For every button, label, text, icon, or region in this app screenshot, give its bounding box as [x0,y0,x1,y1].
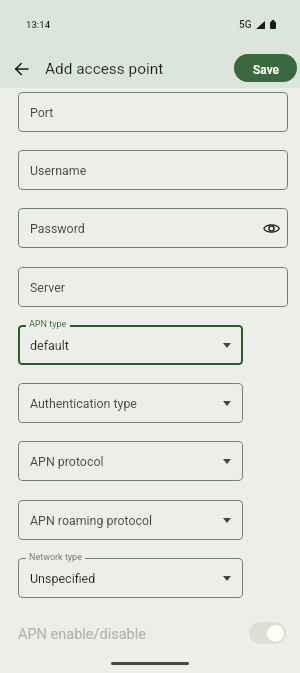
button[interactable]: Password [18,208,288,248]
staticText: APN roaming protocol [30,513,153,528]
staticText: Server [30,280,65,295]
staticText: APN enable/disable [18,626,146,643]
staticText: Network type [29,552,82,563]
button[interactable]: APN roaming protocol [18,500,243,540]
button[interactable]: Authentication type [18,383,243,423]
button[interactable]: Show password [259,216,283,240]
staticText: default [30,338,69,353]
staticText: Add access point [45,60,164,78]
button[interactable]: Server [18,267,288,307]
staticText: Username [30,163,87,178]
staticText: APN type [29,319,67,330]
staticText: 5G [239,19,252,31]
button[interactable]: Port [18,92,288,132]
button[interactable]: APN enable/disable [0,611,300,657]
staticText: APN protocol [30,454,104,469]
button[interactable]: Unspecified [18,558,243,598]
staticText: 13:14 [26,19,51,30]
staticText: Unspecified [30,571,96,586]
staticText: Save [253,63,279,77]
button[interactable]: APN protocol [18,441,243,481]
button[interactable]: Save [234,54,297,82]
staticText: Password [30,221,85,236]
button[interactable]: Username [18,150,288,190]
button[interactable]: APN enable/disable toggle [249,622,286,644]
staticText: Authentication type [30,396,137,411]
staticText: Port [30,105,54,120]
button[interactable]: default [18,325,243,365]
button[interactable]: Back [5,53,37,85]
